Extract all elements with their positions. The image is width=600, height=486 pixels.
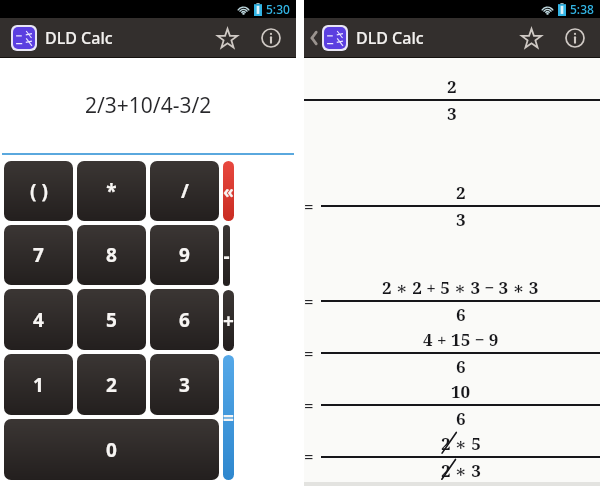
button[interactable]: Info [560, 23, 590, 53]
button[interactable]: 1 [4, 354, 73, 415]
staticText: ( ) [30, 178, 48, 204]
staticText: 2 ∗ 2 + 5 ∗ 3 − 3 ∗ 3 [382, 276, 539, 299]
staticText: 2/3+10/4-3/2 [85, 91, 212, 120]
staticText: 2 [106, 372, 117, 398]
button[interactable]: ( ) [4, 161, 73, 221]
button[interactable]: - [223, 225, 230, 286]
staticText: 1 [33, 372, 44, 398]
staticText: 3 [179, 372, 190, 398]
button[interactable]: Favorite [515, 22, 547, 54]
button[interactable]: Back [308, 25, 320, 51]
button[interactable]: Info [256, 23, 286, 53]
staticText: 7 [33, 242, 44, 268]
staticText: - [223, 243, 230, 269]
staticText: 3 [456, 208, 466, 231]
staticText: / [181, 178, 189, 204]
staticText: 2 ∗ 5 [441, 432, 481, 455]
staticText: 5:30 [266, 1, 290, 17]
staticText: 5 [106, 307, 117, 333]
staticText: 6 [456, 355, 466, 378]
button[interactable]: Favorite [211, 22, 243, 54]
staticText: 8 [106, 242, 117, 268]
staticText: + [223, 308, 234, 334]
staticText: 6 [179, 307, 190, 333]
button[interactable]: 5 [77, 289, 146, 350]
staticText: 6 [456, 303, 466, 326]
button[interactable]: 0 [4, 419, 219, 480]
button[interactable]: 9 [150, 225, 219, 285]
staticText: DLD Calc [356, 27, 424, 49]
staticText: = [304, 342, 314, 365]
button[interactable]: = [223, 355, 234, 480]
staticText: 5:38 [570, 1, 594, 17]
staticText: = [304, 290, 314, 313]
staticText: = [304, 394, 314, 417]
staticText: 2 [447, 75, 457, 98]
button[interactable]: / [150, 161, 219, 221]
staticText: * [106, 178, 117, 204]
button[interactable]: + [223, 290, 234, 351]
button[interactable]: 8 [77, 225, 146, 285]
staticText: 0 [106, 437, 117, 463]
staticText: = [304, 195, 314, 218]
staticText: DLD Calc [45, 27, 113, 49]
staticText: 10 [451, 380, 471, 403]
button[interactable]: * [77, 161, 146, 221]
staticText: = [223, 405, 234, 431]
staticText: 2 [456, 181, 466, 204]
button[interactable]: 4 [4, 289, 73, 350]
staticText: 6 [456, 407, 466, 430]
button[interactable]: « [223, 161, 234, 221]
staticText: = [304, 445, 314, 468]
button[interactable]: 2 [77, 354, 146, 415]
button[interactable]: 3 [150, 354, 219, 415]
staticText: 9 [179, 242, 190, 268]
button[interactable]: 7 [4, 225, 73, 285]
staticText: « [223, 180, 234, 203]
staticText: 3 [447, 102, 457, 125]
staticText: 2 ∗ 3 [441, 459, 481, 481]
button[interactable]: 6 [150, 289, 219, 350]
staticText: 4 + 15 − 9 [423, 328, 499, 351]
staticText: 4 [33, 307, 44, 333]
